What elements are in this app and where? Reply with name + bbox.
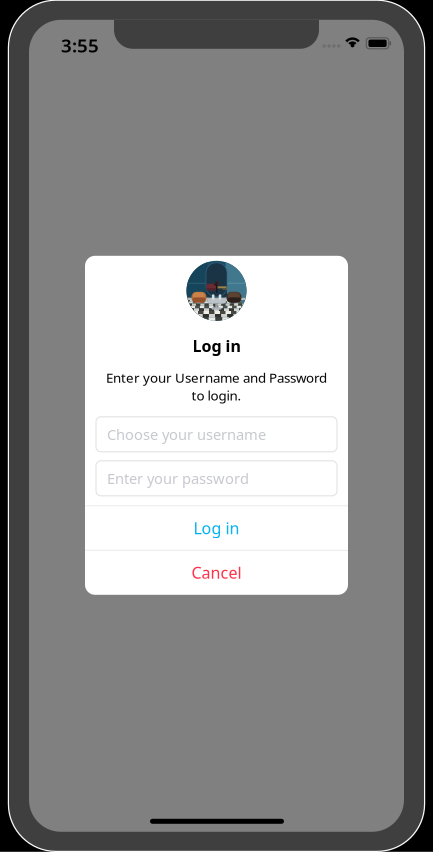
staticText: Choose your username <box>107 425 266 444</box>
staticText: Cancel <box>191 562 241 583</box>
staticText: Log in <box>193 517 239 539</box>
staticText: Log in <box>192 335 240 356</box>
button[interactable]: Log in <box>85 506 348 550</box>
button[interactable]: Cancel <box>85 550 348 595</box>
staticText: Enter your Username and Password <box>106 369 327 386</box>
staticText: 3:55 <box>61 33 99 58</box>
staticText: Enter your password <box>107 469 249 488</box>
staticText: to login. <box>191 386 241 404</box>
